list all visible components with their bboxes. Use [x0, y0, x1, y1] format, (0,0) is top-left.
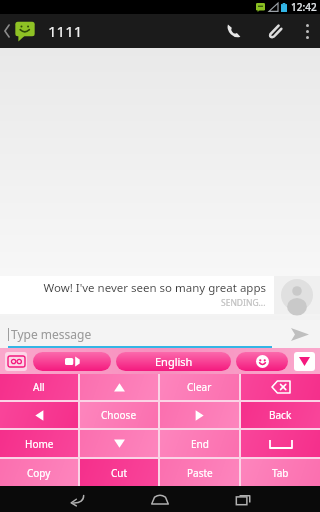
button[interactable]: Send — [280, 320, 320, 348]
button[interactable] — [236, 352, 288, 371]
button[interactable]: Recent apps — [212, 486, 276, 512]
button[interactable]: Home — [0, 430, 78, 457]
button[interactable]: Delete — [241, 374, 320, 400]
staticText: Copy — [27, 466, 51, 480]
other: Space — [270, 440, 292, 448]
button[interactable]: Back to conversations — [0, 14, 42, 48]
button[interactable]: More options — [294, 14, 320, 48]
button[interactable]: End — [160, 430, 239, 457]
button[interactable]: All — [0, 374, 78, 400]
button[interactable]: Paste — [160, 459, 239, 486]
button[interactable]: Hide keyboard — [294, 352, 315, 371]
button[interactable]: Attach — [254, 14, 294, 48]
button[interactable]: Call — [214, 14, 254, 48]
staticText: SENDING... — [221, 297, 266, 309]
staticText: Choose — [101, 408, 137, 422]
staticText: Home — [25, 437, 54, 451]
staticText: Type message — [11, 326, 92, 342]
staticText: Clear — [187, 380, 212, 394]
other: Delete — [272, 381, 290, 393]
button[interactable]: Home — [128, 486, 192, 512]
button[interactable] — [0, 402, 78, 428]
button[interactable]: Copy — [0, 459, 78, 486]
staticText: All — [33, 380, 45, 394]
staticText: 1111 — [48, 21, 83, 41]
button[interactable]: Cut — [80, 459, 158, 486]
staticText: End — [191, 437, 209, 451]
button[interactable]: Tab — [241, 459, 320, 486]
button[interactable]: Clear — [160, 374, 239, 400]
button[interactable]: Wow! I've never seen so many great apps — [0, 276, 274, 314]
button[interactable]: Back — [241, 402, 320, 428]
button[interactable]: Space — [241, 430, 320, 457]
button[interactable] — [80, 374, 158, 400]
staticText: 12:42 — [291, 0, 317, 14]
staticText: Tab — [272, 466, 289, 480]
staticText: Cut — [111, 466, 128, 480]
button[interactable]: English — [116, 352, 231, 371]
button[interactable]: Back — [44, 486, 108, 512]
staticText: Paste — [187, 466, 213, 480]
staticText: English — [155, 354, 193, 369]
button[interactable] — [33, 352, 111, 371]
staticText: Back — [269, 408, 292, 422]
button[interactable] — [80, 430, 158, 457]
staticText: Wow! I've never seen so many great apps — [43, 280, 266, 296]
button[interactable] — [160, 402, 239, 428]
button[interactable]: Choose — [80, 402, 158, 428]
button[interactable]: Type message — [0, 320, 280, 348]
button[interactable]: GO Keyboard menu — [5, 352, 27, 371]
